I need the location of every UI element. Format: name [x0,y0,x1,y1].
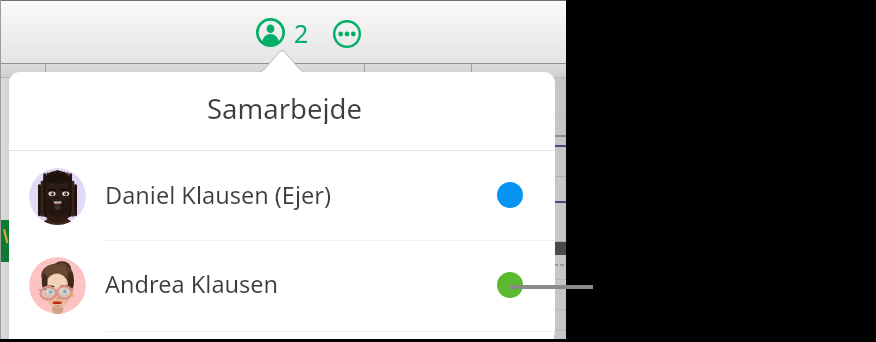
button[interactable]: More options [333,20,361,48]
staticText: Andrea Klausen [105,268,279,300]
button[interactable]: 2 [294,16,309,50]
button[interactable]: Andrea Klausen [9,241,555,329]
staticText: Samarbejde [207,90,362,124]
button[interactable]: Daniel Klausen (Ejer) [9,152,555,240]
button[interactable]: Collaborate [256,18,285,47]
staticText: Daniel Klausen (Ejer) [105,179,331,211]
